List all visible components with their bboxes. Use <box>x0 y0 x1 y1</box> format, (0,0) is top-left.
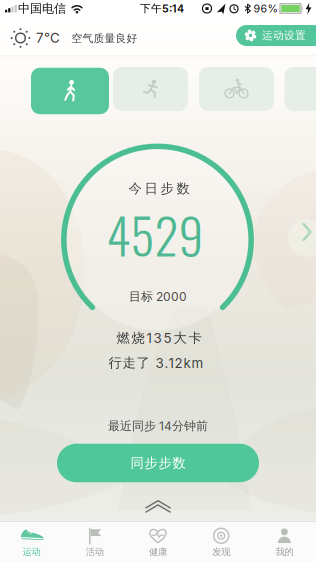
staticText: 活动 <box>86 546 104 558</box>
staticText: 同步步数 <box>130 455 185 471</box>
staticText: 96% <box>253 2 277 15</box>
button[interactable]: 更多运动 <box>284 67 316 111</box>
staticText: 发现 <box>212 546 230 558</box>
staticText: 健康 <box>149 546 167 558</box>
button[interactable]: 展开 <box>144 499 172 513</box>
staticText: 目标 2000 <box>129 289 187 304</box>
staticText: 运动设置 <box>262 29 306 42</box>
staticText: 最近同步 14分钟前 <box>108 419 208 433</box>
button[interactable]: 同步步数 <box>57 444 259 482</box>
button[interactable]: 下一页 <box>299 220 315 244</box>
staticText: 燃烧135大卡 <box>116 330 201 346</box>
staticText: 空气质量良好 <box>71 32 137 45</box>
button[interactable]: 我的 <box>253 521 316 562</box>
button[interactable]: 运动 <box>0 521 63 562</box>
button[interactable]: 跑步 <box>113 67 188 111</box>
staticText: 我的 <box>275 546 293 558</box>
staticText: 中国电信 <box>18 1 66 16</box>
staticText: 行走了 3.12km <box>108 355 203 371</box>
button[interactable]: 发现 <box>190 521 253 562</box>
button[interactable]: 健康 <box>126 521 189 562</box>
button[interactable]: 步行 <box>31 68 109 114</box>
staticText: 今日步数 <box>128 180 189 197</box>
staticText: 7°C <box>36 30 60 46</box>
button[interactable]: 骑行 <box>199 67 274 111</box>
staticText: 4529 <box>106 198 203 271</box>
button[interactable]: 运动设置 <box>236 25 316 46</box>
button[interactable]: 活动 <box>63 521 126 562</box>
staticText: 下午5:14 <box>140 2 184 15</box>
staticText: 运动 <box>23 546 41 558</box>
